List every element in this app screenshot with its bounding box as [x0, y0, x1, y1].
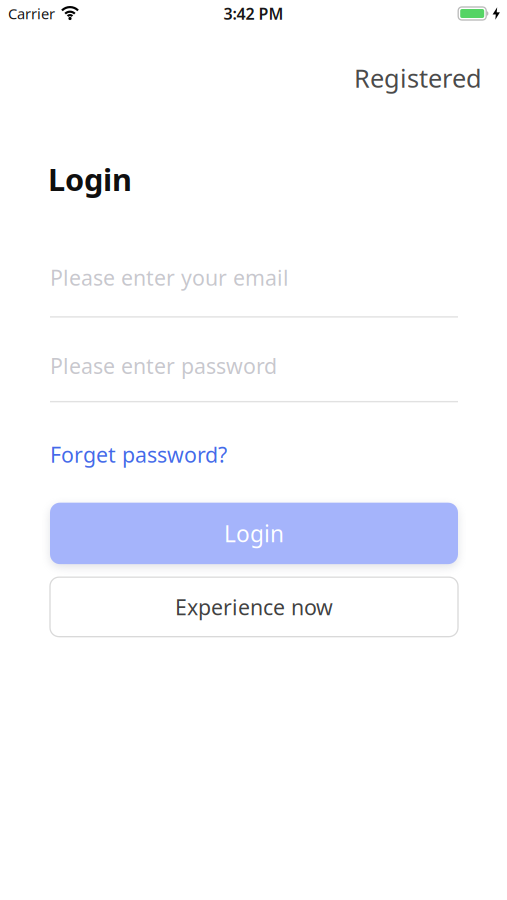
button[interactable]: Login — [50, 503, 458, 564]
staticText: 3:42 PM — [223, 3, 283, 24]
button[interactable]: Forget password? — [50, 440, 227, 469]
staticText: Carrier — [8, 4, 55, 23]
staticText: Please enter password — [50, 352, 277, 380]
staticText: Forget password? — [50, 440, 227, 469]
staticText: Experience now — [175, 593, 333, 621]
button[interactable]: Registered — [354, 61, 482, 95]
button[interactable]: Experience now — [50, 577, 458, 637]
staticText: Login — [224, 518, 284, 548]
staticText: Login — [48, 159, 132, 199]
staticText: Please enter your email — [50, 263, 289, 292]
staticText: Registered — [354, 61, 482, 95]
